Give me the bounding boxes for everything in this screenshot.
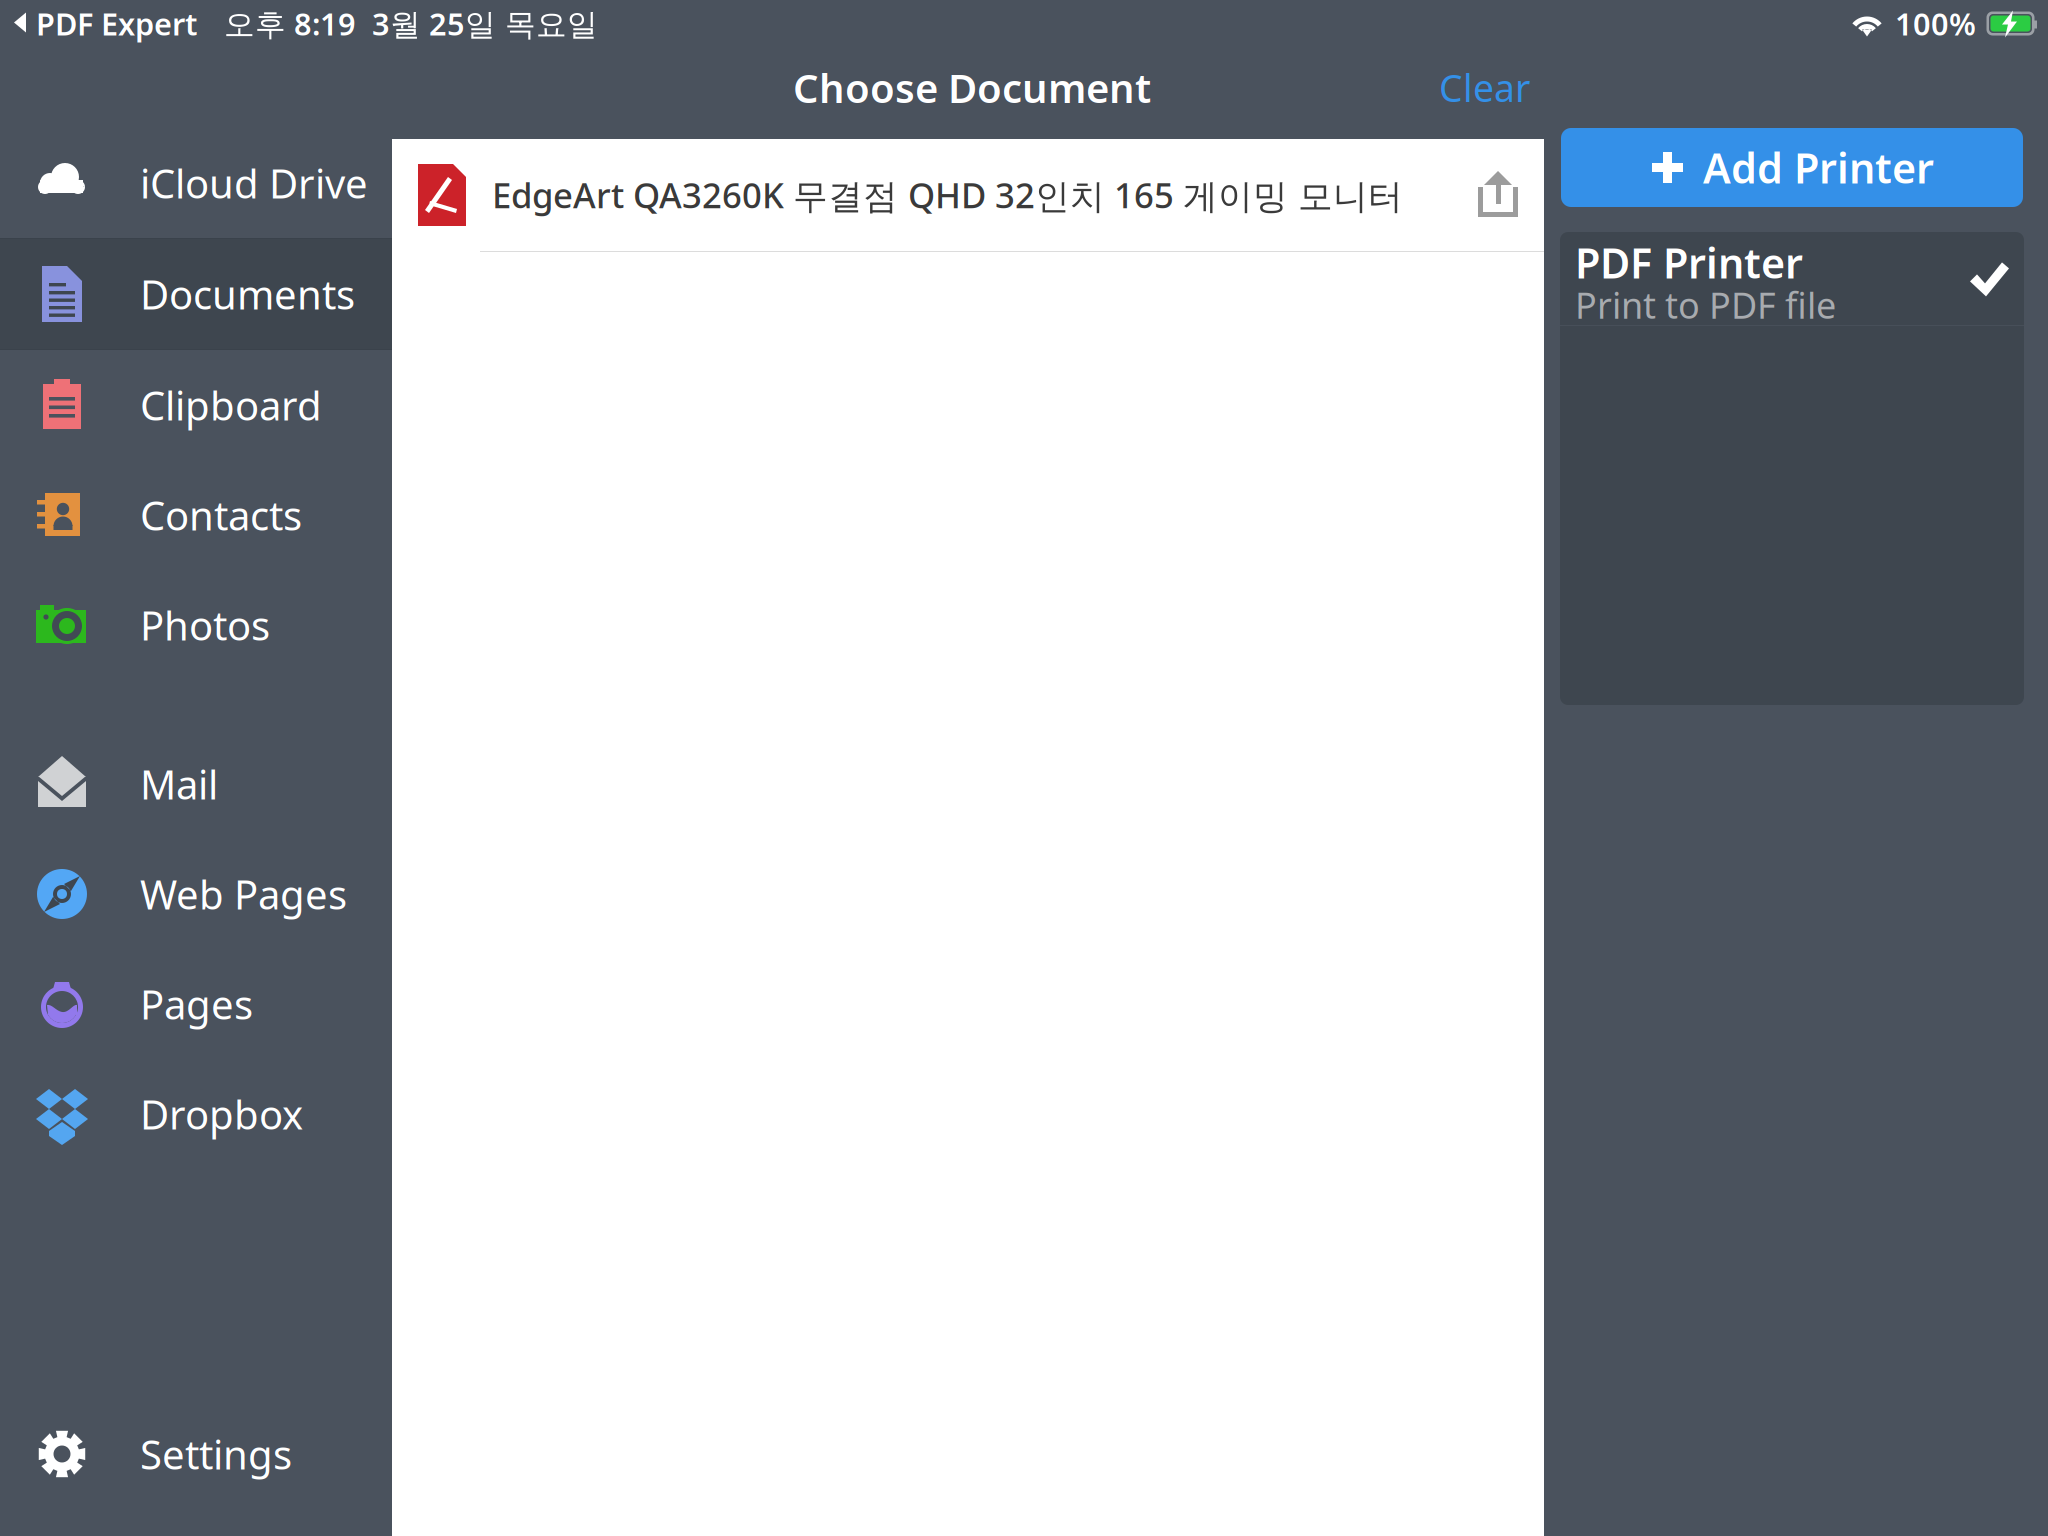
button[interactable]: Mail (0, 729, 392, 839)
button[interactable]: Share (1462, 139, 1536, 251)
staticText: EdgeArt QA3260K 무결점 QHD 32인치 165 게이밍 모니터 (492, 172, 1403, 218)
button[interactable]: Settings (0, 1399, 392, 1509)
staticText: Web Pages (140, 867, 347, 920)
staticText: Photos (140, 598, 270, 651)
staticText: Documents (140, 267, 355, 320)
button[interactable]: EdgeArt QA3260K 무결점 QHD 32인치 165 게이밍 모니터 (392, 139, 1544, 251)
staticText: PDF Printer (1575, 235, 1803, 290)
button[interactable]: Clipboard (0, 350, 392, 460)
staticText: iCloud Drive (140, 156, 368, 209)
staticText: Dropbox (140, 1087, 303, 1140)
button[interactable]: Web Pages (0, 839, 392, 949)
staticText: Contacts (140, 488, 302, 541)
button[interactable]: Contacts (0, 460, 392, 570)
staticText: Print to PDF file (1575, 281, 1836, 329)
staticText: PDF Expert (28, 3, 197, 44)
staticText: Pages (140, 977, 253, 1030)
staticText: Clipboard (140, 378, 322, 431)
staticText: Settings (140, 1427, 292, 1480)
button[interactable]: Clear (1417, 51, 1552, 124)
staticText: Clear (1439, 63, 1530, 112)
staticText: Add Printer (1703, 140, 1934, 195)
staticText: Mail (140, 757, 218, 810)
staticText: 100% (1887, 3, 1984, 44)
button[interactable]: Dropbox (0, 1059, 392, 1169)
staticText: 오후 8:19 (197, 3, 356, 44)
staticText: Choose Document (793, 61, 1151, 114)
button[interactable]: Photos (0, 570, 392, 680)
staticText: 3월 25일 목요일 (356, 3, 598, 44)
button[interactable]: iCloud Drive (0, 128, 392, 238)
button[interactable]: Add Printer (1561, 128, 2023, 207)
button[interactable]: Pages (0, 949, 392, 1059)
button[interactable]: PDF Printer (1560, 232, 2024, 325)
button[interactable]: Documents (0, 239, 392, 349)
